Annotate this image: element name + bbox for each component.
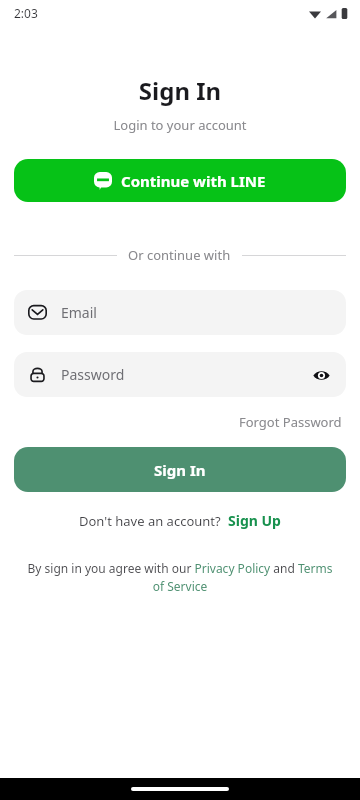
button[interactable]: Continue with LINE bbox=[14, 159, 346, 202]
button[interactable]: By sign in you agree with our Privacy Po… bbox=[26, 560, 334, 595]
button[interactable]: Email bbox=[14, 290, 346, 335]
staticText: 2:03 bbox=[14, 5, 38, 21]
staticText: Or continue with bbox=[128, 246, 231, 264]
staticText: Email bbox=[61, 303, 97, 322]
staticText: Sign In bbox=[154, 460, 206, 480]
staticText: Login to your account bbox=[0, 116, 360, 134]
button[interactable]: Password bbox=[14, 352, 346, 397]
staticText: By sign in you agree with our Privacy Po… bbox=[26, 560, 334, 595]
staticText: Don't have an account? bbox=[79, 512, 221, 530]
staticText: Password bbox=[61, 365, 306, 384]
staticText: Continue with LINE bbox=[121, 171, 266, 191]
button[interactable]: Show password bbox=[306, 360, 336, 390]
button[interactable]: Sign Up bbox=[228, 511, 281, 530]
button[interactable]: Sign In bbox=[14, 447, 346, 492]
button[interactable]: Forgot Password bbox=[235, 409, 346, 435]
staticText: Sign In bbox=[0, 74, 360, 107]
